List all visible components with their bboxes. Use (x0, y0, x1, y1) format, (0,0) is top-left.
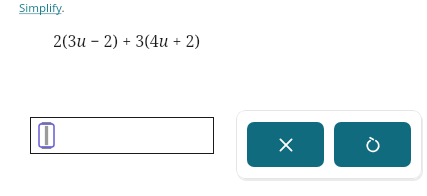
button[interactable]: Clear (247, 122, 324, 167)
button[interactable]: Undo (334, 122, 411, 167)
button[interactable]: Simplify. (19, 0, 65, 16)
staticText: 2(3u − 2) + 3(4u + 2) (53, 30, 201, 52)
staticText: Simplify. (19, 0, 65, 16)
button[interactable] (30, 117, 214, 154)
